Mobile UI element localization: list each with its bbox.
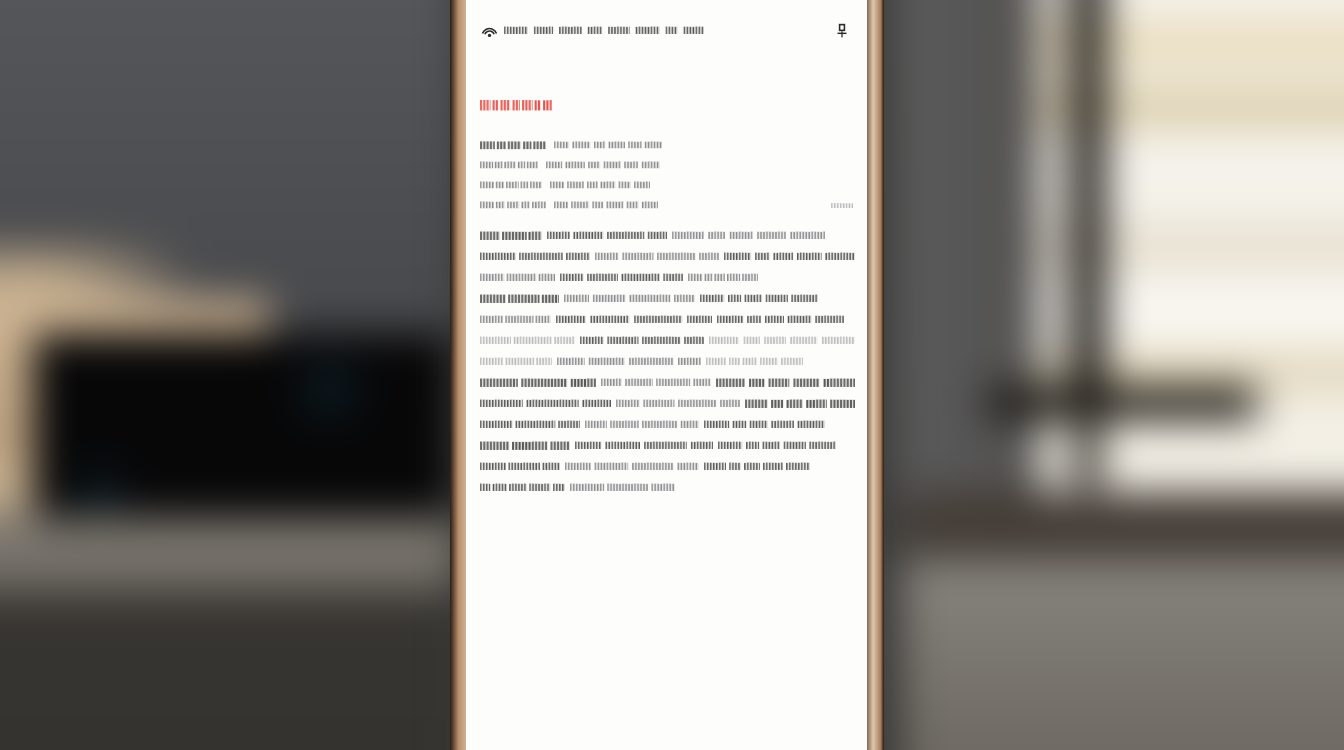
button[interactable] <box>480 98 552 113</box>
button[interactable]: Connection status <box>478 20 500 42</box>
button[interactable] <box>480 376 855 389</box>
button[interactable] <box>480 355 803 368</box>
button[interactable] <box>480 160 853 171</box>
button[interactable] <box>480 292 818 305</box>
button[interactable] <box>480 397 855 410</box>
button[interactable]: More options <box>827 16 857 46</box>
button[interactable] <box>480 313 844 326</box>
button[interactable] <box>480 250 855 263</box>
button[interactable] <box>480 334 855 347</box>
button[interactable] <box>480 229 825 242</box>
button[interactable] <box>480 140 853 151</box>
button[interactable] <box>480 460 810 473</box>
button[interactable] <box>480 418 825 431</box>
button[interactable] <box>480 481 675 494</box>
button[interactable] <box>480 180 853 191</box>
button[interactable] <box>480 271 758 284</box>
button[interactable] <box>480 439 836 452</box>
